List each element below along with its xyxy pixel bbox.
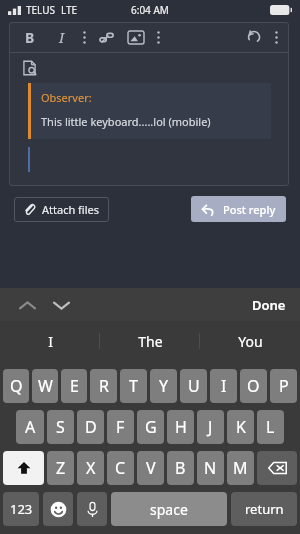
button[interactable]: Italic xyxy=(51,26,73,48)
staticText: space xyxy=(150,500,188,519)
staticText: return xyxy=(245,500,284,518)
button[interactable]: Backspace xyxy=(257,451,297,485)
staticText: B xyxy=(25,28,35,47)
button[interactable]: U xyxy=(180,369,207,403)
staticText: Attach files xyxy=(42,202,100,217)
staticText: A xyxy=(25,416,36,438)
staticText: J xyxy=(208,416,213,438)
button[interactable]: D xyxy=(77,410,104,444)
staticText: N xyxy=(204,457,217,479)
staticText: H xyxy=(175,416,187,438)
button[interactable]: 123 xyxy=(3,492,39,526)
staticText: D xyxy=(85,416,97,438)
staticText: Observer: xyxy=(41,90,92,105)
button[interactable]: K xyxy=(227,410,254,444)
button[interactable]: T xyxy=(120,369,147,403)
button[interactable]: P xyxy=(270,369,297,403)
staticText: I xyxy=(221,375,227,397)
button[interactable]: Y xyxy=(150,369,177,403)
button[interactable]: Insert link xyxy=(95,26,117,48)
staticText: P xyxy=(279,375,289,397)
button[interactable]: Q xyxy=(3,369,29,403)
staticText: LTE xyxy=(61,3,78,17)
staticText: M xyxy=(233,457,248,479)
button[interactable]: E xyxy=(61,369,87,403)
button[interactable]: Preview document xyxy=(19,57,41,79)
staticText: R xyxy=(99,375,109,397)
staticText: 123 xyxy=(10,500,33,518)
staticText: S xyxy=(56,416,65,438)
staticText: O xyxy=(247,375,260,397)
button[interactable]: Next field xyxy=(48,292,74,318)
button[interactable]: Undo xyxy=(243,26,265,48)
button[interactable]: A xyxy=(16,410,44,444)
button[interactable]: H xyxy=(167,410,194,444)
button[interactable]: Post reply xyxy=(191,196,286,222)
button[interactable]: Z xyxy=(47,451,74,485)
staticText: B xyxy=(175,457,186,479)
button[interactable]: More options xyxy=(79,26,89,48)
button[interactable]: O xyxy=(240,369,267,403)
staticText: T xyxy=(129,375,138,397)
staticText: This little keyboard.....lol (mobile) xyxy=(41,114,211,129)
button[interactable]: W xyxy=(32,369,58,403)
button[interactable]: Done xyxy=(238,290,300,320)
button[interactable]: Bold xyxy=(19,26,41,48)
staticText: E xyxy=(70,375,79,397)
button[interactable]: Shift xyxy=(3,451,44,485)
button[interactable]: B xyxy=(167,451,194,485)
button[interactable]: More options xyxy=(153,26,163,48)
button[interactable]: C xyxy=(107,451,134,485)
staticText: W xyxy=(38,375,53,397)
staticText: Post reply xyxy=(223,202,276,217)
button[interactable]: Voice input xyxy=(77,492,107,526)
staticText: U xyxy=(188,375,200,397)
button[interactable]: I xyxy=(0,321,100,361)
staticText: I xyxy=(59,28,65,47)
staticText: F xyxy=(116,416,125,438)
staticText: The xyxy=(138,332,163,351)
button[interactable]: V xyxy=(137,451,164,485)
button[interactable]: M xyxy=(227,451,254,485)
staticText: L xyxy=(266,416,275,438)
button[interactable]: space xyxy=(111,492,227,526)
button[interactable]: F xyxy=(107,410,134,444)
button[interactable]: S xyxy=(47,410,74,444)
button[interactable]: Emoji xyxy=(43,492,73,526)
staticText: Q xyxy=(10,375,23,397)
staticText: C xyxy=(115,457,126,479)
button[interactable]: Attach files xyxy=(14,197,109,222)
button[interactable]: L xyxy=(257,410,284,444)
staticText: G xyxy=(145,416,157,438)
staticText: TELUS xyxy=(26,3,56,17)
button[interactable]: Previous field xyxy=(14,292,40,318)
button[interactable]: N xyxy=(197,451,224,485)
button[interactable]: G xyxy=(137,410,164,444)
button[interactable]: More options xyxy=(271,26,281,48)
staticText: V xyxy=(146,457,156,479)
button[interactable]: J xyxy=(197,410,224,444)
staticText: K xyxy=(236,416,246,438)
staticText: Y xyxy=(159,375,169,397)
button[interactable]: The xyxy=(100,321,200,361)
staticText: Done xyxy=(252,296,286,314)
button[interactable]: Insert image xyxy=(125,26,147,48)
staticText: Z xyxy=(56,457,66,479)
staticText: 6:04 AM xyxy=(131,3,169,17)
button[interactable]: return xyxy=(231,492,297,526)
staticText: You xyxy=(238,332,263,351)
button[interactable]: I xyxy=(210,369,237,403)
staticText: X xyxy=(86,457,96,479)
button[interactable]: You xyxy=(200,321,300,361)
staticText: I xyxy=(48,332,53,351)
button[interactable]: X xyxy=(77,451,104,485)
button[interactable]: R xyxy=(90,369,117,403)
